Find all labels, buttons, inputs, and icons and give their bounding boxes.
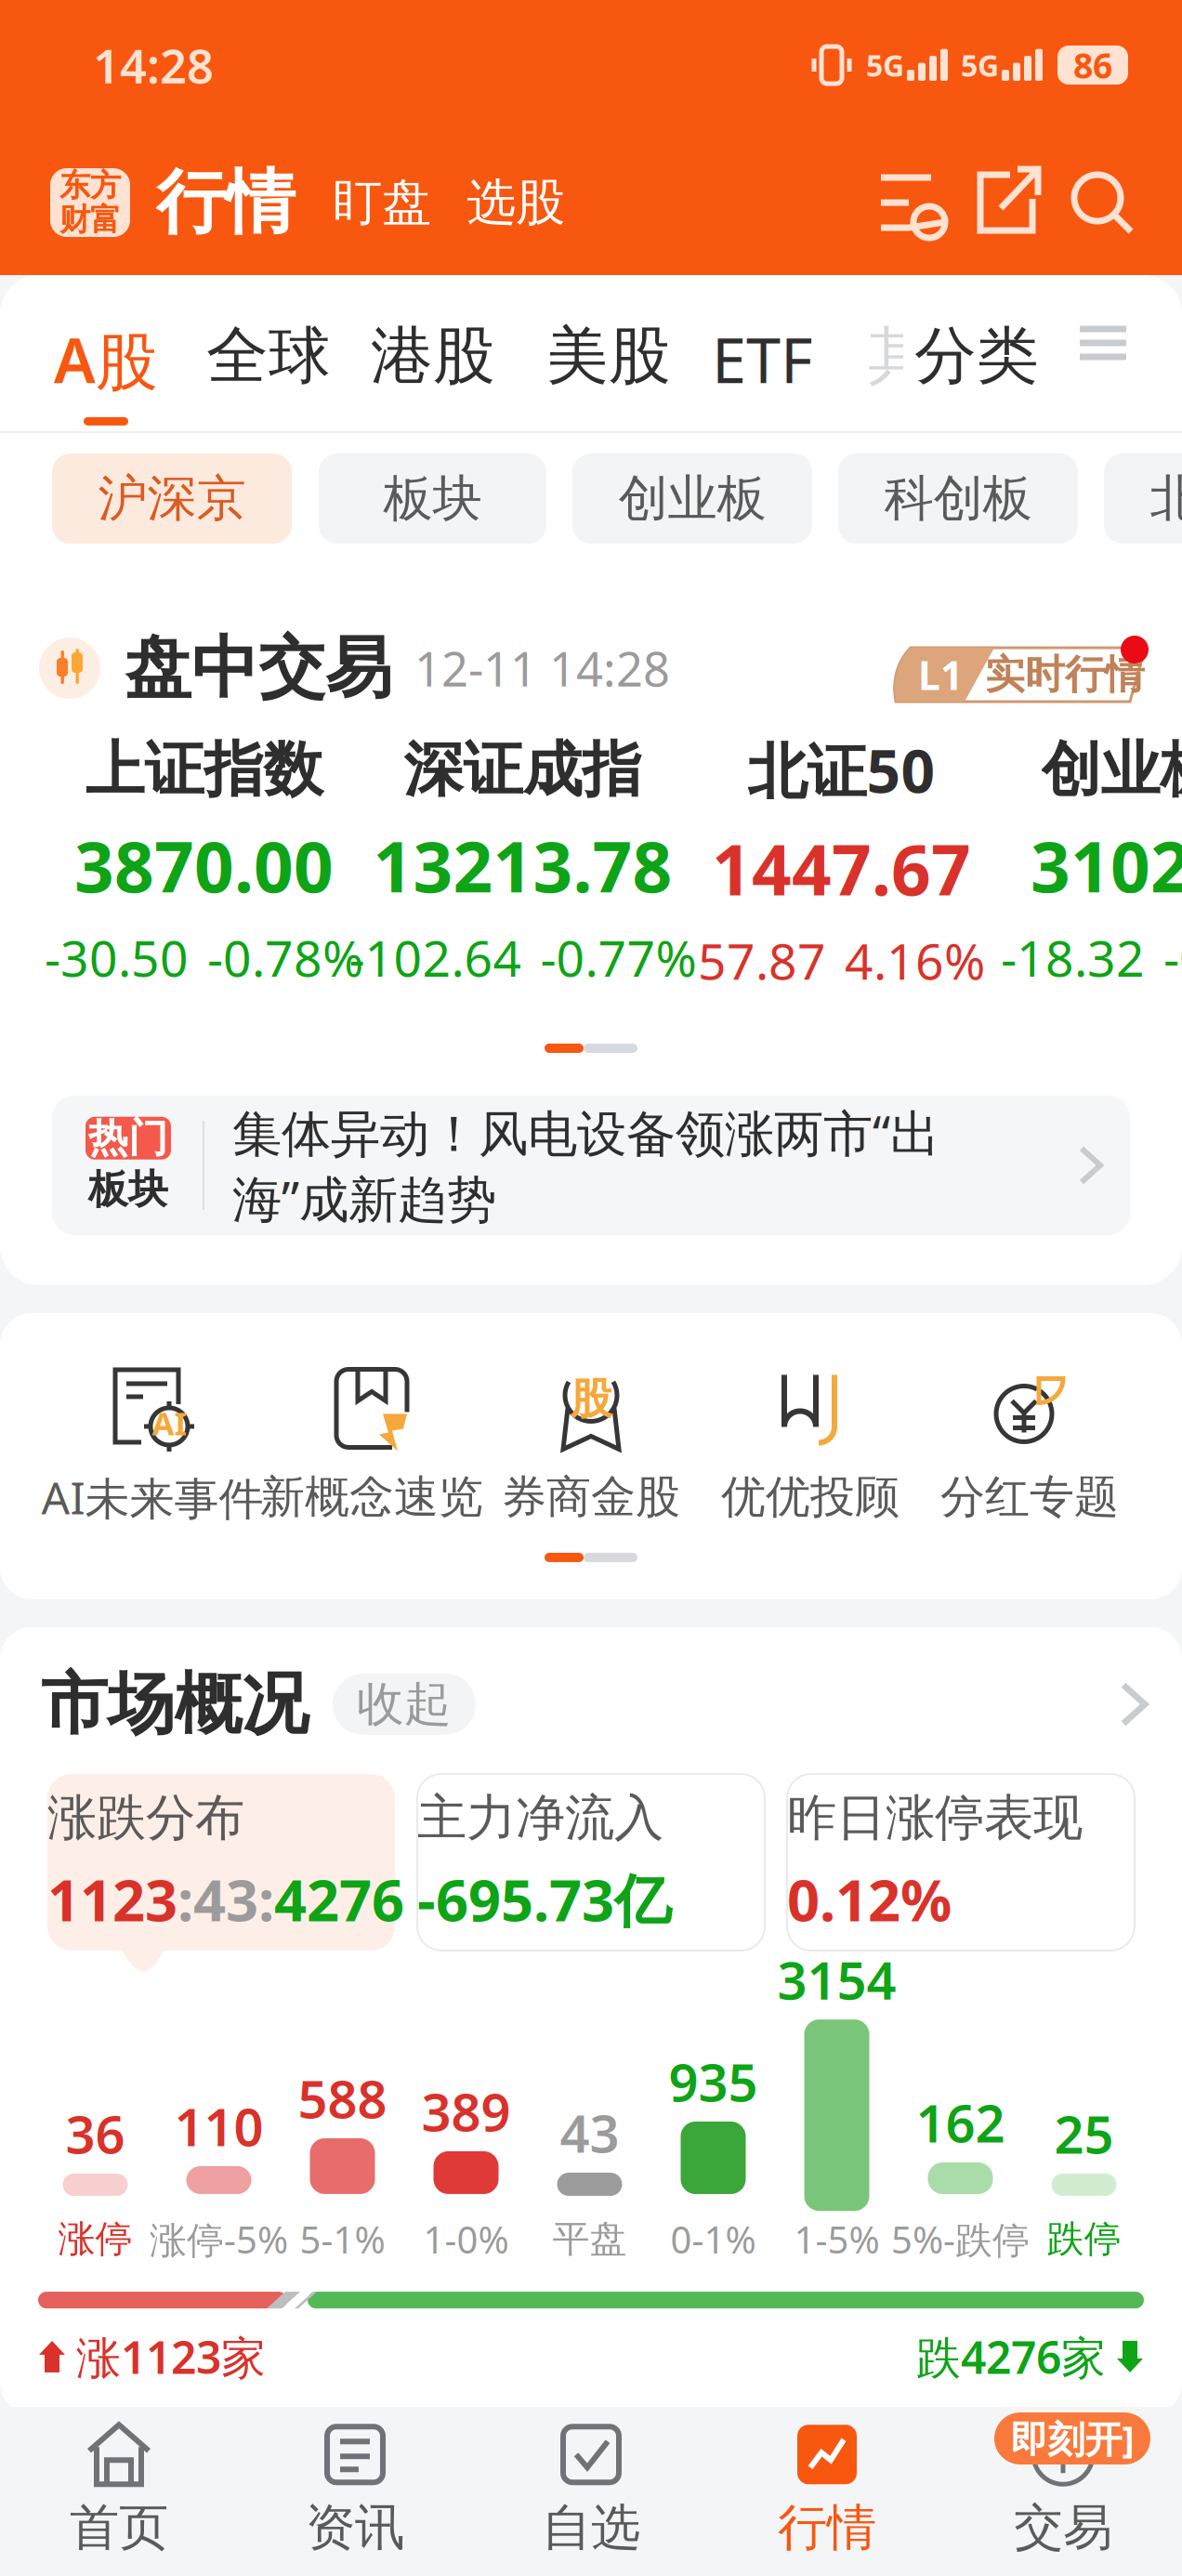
staticText: 1447.67 — [712, 822, 971, 915]
staticText: 自选 — [542, 2497, 640, 2558]
staticText: 涨1123家 — [76, 2327, 266, 2386]
staticText: L1 — [918, 648, 963, 701]
staticText: 财富 — [59, 201, 121, 239]
button[interactable]: 行情 — [709, 2407, 945, 2576]
staticText: 涨跌分布 — [47, 1787, 244, 1848]
staticText: -0.59% — [1163, 925, 1182, 990]
staticText: 市场概况 — [41, 1663, 309, 1745]
staticText: 3154 — [777, 1945, 896, 2014]
staticText: 平盘 — [552, 2216, 627, 2262]
staticText: 上证指数 — [85, 733, 323, 806]
staticText: 美股 — [546, 318, 671, 394]
staticText: 其 — [868, 318, 930, 394]
button[interactable]: 股 — [481, 1369, 701, 1525]
button[interactable]: A股 — [54, 318, 158, 426]
staticText: 行情 — [156, 160, 295, 245]
button[interactable]: 主力净流入 — [417, 1774, 765, 1951]
button[interactable]: 行情 — [156, 160, 295, 245]
staticText: ETF — [712, 318, 813, 400]
button[interactable]: 港股 — [371, 318, 495, 394]
button[interactable]: 交易 — [945, 2407, 1181, 2576]
staticText: 券商金股 — [502, 1470, 680, 1525]
staticText: 盘中交易 — [125, 627, 392, 709]
staticText: 14:28 — [93, 34, 214, 96]
button[interactable]: AI — [43, 1367, 262, 1527]
button[interactable]: 优优投顾 — [701, 1369, 920, 1525]
staticText: 分类 — [914, 318, 1039, 394]
button[interactable]: 自选 — [473, 2407, 709, 2576]
staticText: A股 — [54, 318, 158, 400]
staticText: 跌停 — [1047, 2216, 1121, 2262]
button[interactable]: 板块 — [319, 453, 546, 544]
staticText: 1-5% — [794, 2215, 880, 2264]
staticText: -695.73亿 — [417, 1861, 671, 1937]
staticText: 5G — [866, 45, 904, 85]
staticText: 集体异动！风电设备领涨两市“出海”成新趋势 — [232, 1099, 939, 1231]
staticText: 3102.33 — [1031, 819, 1182, 912]
staticText: 优优投顾 — [721, 1470, 900, 1525]
button[interactable]: 选股 — [466, 172, 565, 233]
staticText: 12-11 14:28 — [414, 637, 670, 699]
staticText: 板块 — [88, 1165, 168, 1214]
staticText: 交易 — [1014, 2497, 1112, 2558]
button[interactable]: 分红专题 — [920, 1369, 1139, 1525]
staticText: 13213.78 — [373, 819, 672, 912]
staticText: 5G — [961, 45, 999, 85]
staticText: 4276 — [274, 1861, 404, 1937]
button[interactable]: 收起 — [333, 1674, 476, 1735]
staticText: -0.78% — [207, 925, 363, 990]
button[interactable]: Share — [972, 172, 1041, 233]
button[interactable]: Search — [1072, 173, 1132, 232]
button[interactable]: 创业板 — [572, 453, 812, 544]
staticText: 涨停 — [58, 2216, 132, 2262]
staticText: -102.64 — [349, 925, 522, 990]
button[interactable]: 美股 — [546, 318, 671, 394]
button[interactable]: Settings — [881, 172, 948, 233]
button[interactable]: 首页 — [1, 2407, 237, 2576]
staticText: 创业板指 — [1041, 733, 1182, 806]
button[interactable]: 东方 — [50, 168, 130, 237]
staticText: -30.50 — [45, 925, 189, 990]
button[interactable]: More categories — [1080, 329, 1126, 357]
button[interactable]: ETF — [712, 318, 813, 400]
staticText: 5-1% — [300, 2215, 385, 2264]
staticText: 25 — [1054, 2099, 1114, 2168]
staticText: 科创板 — [884, 468, 1032, 529]
staticText: 全球 — [206, 318, 331, 394]
staticText: 收起 — [357, 1675, 452, 1733]
staticText: 即刻开] — [1011, 2414, 1134, 2463]
staticText: 1-0% — [423, 2215, 509, 2264]
button[interactable]: 全球 — [206, 318, 331, 394]
staticText: :43: — [177, 1861, 274, 1937]
button[interactable]: 分类 — [903, 318, 1039, 394]
button[interactable]: 新概念速览 — [262, 1369, 481, 1525]
staticText: 110 — [174, 2091, 263, 2161]
staticText: 57.87 — [698, 928, 826, 993]
staticText: 0-1% — [670, 2215, 756, 2264]
button[interactable]: Market overview detail — [1123, 1685, 1145, 1724]
staticText: 盯盘 — [333, 172, 431, 233]
button[interactable]: 科创板 — [838, 453, 1078, 544]
staticText: 东方 — [59, 166, 121, 204]
staticText: 跌4276家 — [916, 2327, 1106, 2386]
staticText: 热门 — [88, 1114, 168, 1163]
staticText: 板块 — [383, 468, 482, 529]
staticText: 5%-跌停 — [891, 2215, 1030, 2264]
staticText: 86 — [1073, 42, 1112, 88]
button[interactable]: 热门 — [52, 1096, 1130, 1235]
button[interactable]: 北交所 — [1104, 453, 1182, 544]
staticText: 股 — [570, 1373, 612, 1425]
staticText: 43 — [560, 2098, 619, 2167]
button[interactable]: 沪深京 — [52, 453, 292, 544]
staticText: 沪深京 — [98, 468, 246, 529]
staticText: 资讯 — [306, 2497, 404, 2558]
staticText: AI未来事件 — [41, 1467, 263, 1527]
staticText: 新概念速览 — [260, 1470, 483, 1525]
staticText: 分红专题 — [940, 1470, 1119, 1525]
staticText: 主力净流入 — [417, 1787, 663, 1848]
button[interactable]: 盯盘 — [333, 172, 431, 233]
button[interactable]: 涨跌分布 — [47, 1774, 395, 1951]
button[interactable]: 资讯 — [237, 2407, 473, 2576]
staticText: 162 — [916, 2088, 1005, 2157]
button[interactable]: 昨日涨停表现 — [787, 1774, 1135, 1951]
